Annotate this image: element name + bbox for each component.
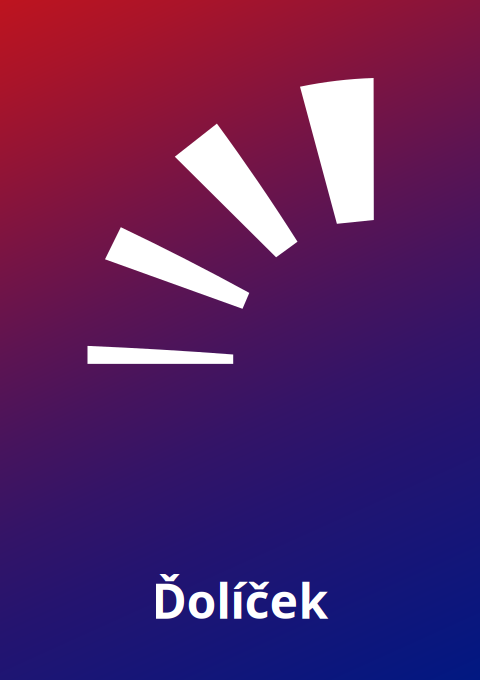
- staticText: Ďolíček: [151, 568, 328, 632]
